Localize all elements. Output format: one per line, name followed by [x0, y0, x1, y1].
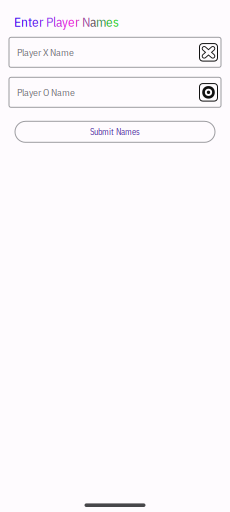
staticText: P	[46, 13, 53, 30]
staticText: Submit Names	[90, 126, 140, 137]
staticText: m	[96, 13, 106, 30]
button[interactable]: Player O Name	[9, 77, 221, 107]
staticText: n	[21, 13, 28, 30]
staticText: y	[62, 13, 68, 30]
staticText: e	[32, 13, 39, 30]
staticText: Player X Name	[17, 46, 74, 59]
button[interactable]: Player X Name	[9, 37, 221, 67]
staticText: N	[82, 13, 90, 30]
staticText: e	[68, 13, 75, 30]
staticText: s	[113, 13, 119, 30]
staticText: E	[14, 13, 21, 30]
staticText: t	[28, 13, 32, 30]
staticText	[43, 13, 46, 30]
staticText	[79, 13, 82, 30]
staticText: a	[90, 13, 96, 30]
button[interactable]: Submit Names	[15, 121, 215, 142]
staticText: r	[39, 13, 43, 30]
staticText: a	[56, 13, 62, 30]
staticText: l	[53, 13, 56, 30]
staticText: e	[106, 13, 113, 30]
staticText: Player O Name	[17, 86, 75, 99]
staticText: r	[75, 13, 79, 30]
